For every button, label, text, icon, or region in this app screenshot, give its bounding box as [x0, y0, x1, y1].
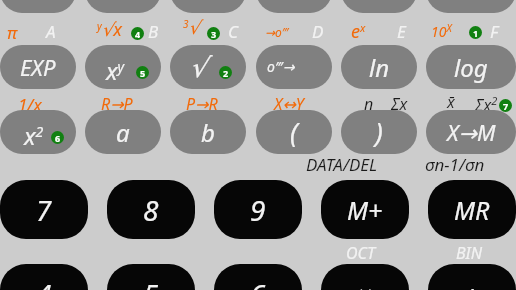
- staticText: σn-1/σn: [425, 153, 485, 176]
- staticText: 7: [503, 100, 509, 112]
- staticText: ÷: [465, 277, 480, 290]
- button[interactable]: M+: [321, 180, 409, 239]
- button[interactable]: ln: [341, 45, 417, 89]
- staticText: √: [190, 52, 208, 83]
- staticText: 9: [250, 191, 266, 229]
- staticText: A: [46, 20, 56, 43]
- staticText: 6: [55, 132, 61, 144]
- staticText: Σx: [391, 93, 408, 115]
- staticText: (: [290, 114, 298, 151]
- button[interactable]: x squared: [0, 110, 76, 154]
- staticText: R→P: [101, 93, 133, 115]
- staticText: x2: [24, 119, 44, 152]
- staticText: 1: [473, 27, 479, 39]
- button[interactable]: b: [170, 110, 246, 154]
- staticText: 5: [140, 67, 146, 79]
- button[interactable]: 8: [107, 180, 195, 239]
- button[interactable]: sin: [256, 0, 332, 13]
- staticText: BIN: [456, 242, 483, 264]
- staticText: 1/x: [18, 93, 42, 116]
- staticText: C: [228, 20, 238, 43]
- button[interactable]: X→M: [426, 110, 516, 154]
- staticText: y√x: [97, 17, 122, 42]
- button[interactable]: 5: [107, 264, 195, 290]
- staticText: 7: [36, 191, 52, 229]
- staticText: P→R: [186, 93, 218, 115]
- staticText: 5: [143, 275, 159, 290]
- staticText: E: [397, 20, 406, 43]
- button[interactable]: log: [426, 45, 516, 89]
- staticText: 6: [250, 275, 266, 290]
- button[interactable]: Degrees to DMS: [256, 45, 332, 89]
- staticText: 2: [223, 67, 229, 79]
- staticText: b: [201, 116, 215, 149]
- staticText: 3: [211, 28, 217, 40]
- button[interactable]: 6: [214, 264, 302, 290]
- button[interactable]: ×: [321, 264, 409, 290]
- button[interactable]: ÷: [428, 264, 516, 290]
- staticText: D: [312, 20, 324, 43]
- button[interactable]: ): [341, 110, 417, 154]
- staticText: OCT: [346, 242, 375, 264]
- staticText: 3√: [183, 17, 200, 38]
- button[interactable]: DRG: [170, 0, 246, 13]
- staticText: X↔Y: [274, 93, 304, 115]
- staticText: ln: [369, 51, 390, 84]
- button[interactable]: tan: [426, 0, 516, 13]
- staticText: ): [375, 114, 383, 151]
- button[interactable]: a: [85, 110, 161, 154]
- button[interactable]: 4: [0, 264, 88, 290]
- staticText: n: [364, 93, 374, 115]
- button[interactable]: (: [256, 110, 332, 154]
- button[interactable]: EXP: [0, 45, 76, 89]
- staticText: F: [490, 20, 499, 43]
- button[interactable]: x to the power y: [85, 45, 161, 89]
- staticText: EXP: [20, 52, 56, 82]
- staticText: 10X: [431, 21, 452, 41]
- button[interactable]: cos: [341, 0, 417, 13]
- staticText: o‴→: [267, 57, 295, 76]
- staticText: Σx2: [475, 93, 498, 115]
- button[interactable]: 7: [0, 180, 88, 239]
- button[interactable]: Square root: [170, 45, 246, 89]
- staticText: x̄: [447, 91, 455, 113]
- staticText: π: [7, 21, 17, 44]
- staticText: ×: [358, 277, 373, 290]
- staticText: 8: [143, 191, 159, 229]
- staticText: DATA/DEL: [306, 153, 378, 176]
- staticText: X→M: [447, 117, 496, 147]
- staticText: M+: [347, 193, 383, 227]
- staticText: →o‴: [265, 24, 289, 40]
- button[interactable]: Sci: [85, 0, 161, 13]
- staticText: log: [454, 51, 488, 84]
- staticText: MR: [454, 193, 490, 227]
- button[interactable]: %: [0, 0, 76, 13]
- staticText: xy: [106, 54, 125, 87]
- staticText: ex: [351, 19, 366, 44]
- staticText: 4: [36, 275, 52, 290]
- staticText: B: [148, 20, 159, 43]
- staticText: 4: [135, 28, 141, 40]
- button[interactable]: 9: [214, 180, 302, 239]
- staticText: a: [116, 116, 130, 149]
- button[interactable]: MR: [428, 180, 516, 239]
